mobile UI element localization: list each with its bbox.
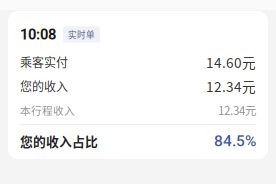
staticText: 您的收入 — [20, 77, 68, 95]
button[interactable]: 您的收入占比 — [8, 125, 268, 157]
staticText: 乘客实付 — [20, 53, 68, 71]
staticText: 您的收入占比 — [20, 132, 98, 150]
staticText: 实时单 — [68, 28, 95, 41]
staticText: 84.5% — [214, 132, 256, 150]
staticText: 10:08 — [20, 26, 56, 43]
staticText: 14.60元 — [206, 52, 256, 72]
staticText: 12.34元 — [206, 76, 256, 96]
button[interactable]: 实时单 — [63, 26, 100, 43]
staticText: 本行程收入 — [20, 102, 75, 118]
staticText: 12.34元 — [218, 102, 256, 118]
